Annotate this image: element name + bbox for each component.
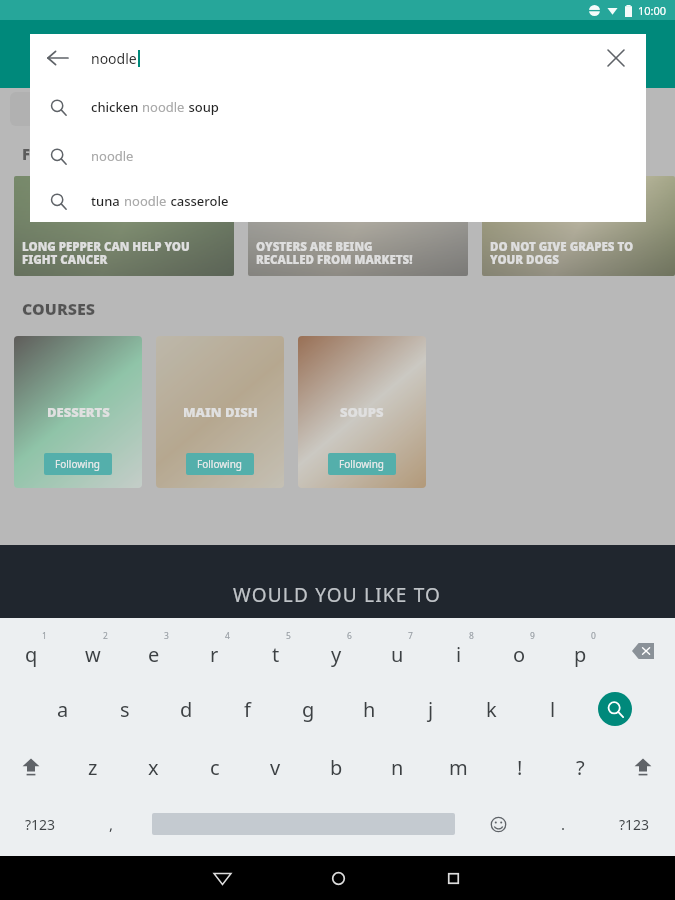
button[interactable]: l (522, 680, 583, 738)
staticText: Following (197, 457, 243, 471)
button[interactable]: Filter (10, 92, 44, 126)
staticText: SOUPS (340, 403, 384, 421)
button[interactable]: LONG PEPPER CAN HELP YOU FIGHT CANCER (14, 176, 234, 276)
button[interactable]: SOUPS (298, 336, 426, 488)
button[interactable] (142, 796, 464, 852)
button[interactable]: ! (489, 738, 550, 796)
button[interactable]: ?123 (594, 796, 675, 852)
button[interactable]: OYSTERS ARE BEING RECALLED FROM MARKETS! (248, 176, 468, 276)
button[interactable]: 7 (367, 622, 428, 680)
button[interactable]: j (400, 680, 461, 738)
staticText: 1 (42, 630, 47, 642)
button[interactable]: 4 (184, 622, 245, 680)
staticText: o (513, 641, 526, 668)
button[interactable]: ?123 (0, 796, 80, 852)
staticText: x (148, 754, 159, 781)
button[interactable]: 9 (489, 622, 550, 680)
staticText: r (210, 641, 219, 668)
staticText: p (574, 641, 587, 668)
staticText: 4 (225, 630, 230, 642)
staticText: MAIN DISH (183, 403, 258, 421)
button[interactable]: 6 (306, 622, 367, 680)
staticText: q (25, 641, 38, 668)
button[interactable]: f (217, 680, 278, 738)
button[interactable]: k (461, 680, 522, 738)
staticText: . (561, 814, 566, 834)
button[interactable]: Home (316, 856, 360, 900)
button[interactable]: Back (200, 856, 244, 900)
staticText: 10:00 (638, 3, 667, 18)
button[interactable]: a (32, 680, 94, 738)
button[interactable]: x (123, 738, 184, 796)
staticText: a (57, 696, 69, 723)
button[interactable]: Following (44, 453, 112, 475)
staticText: , (109, 814, 114, 834)
button[interactable]: v (245, 738, 306, 796)
button[interactable]: g (278, 680, 339, 738)
staticText: COURSES (22, 298, 96, 320)
button[interactable]: Clear (596, 38, 636, 78)
button[interactable]: tuna (30, 180, 646, 222)
button[interactable]: Shift (0, 738, 62, 796)
button[interactable]: , (80, 796, 142, 852)
staticText: FEATURED (22, 144, 98, 164)
staticText: chicken (91, 98, 142, 116)
staticText: b (330, 754, 343, 781)
button[interactable]: Back (38, 38, 78, 78)
staticText: ! (517, 754, 523, 781)
button[interactable]: Recents (431, 856, 475, 900)
staticText: z (88, 754, 98, 781)
staticText: DESSERTS (47, 403, 110, 421)
button[interactable]: s (94, 680, 156, 738)
staticText: 7 (408, 630, 413, 642)
button[interactable]: noodle (30, 131, 646, 180)
staticText: 6 (347, 630, 352, 642)
button[interactable]: 8 (428, 622, 489, 680)
button[interactable]: DO NOT GIVE GRAPES TO YOUR DOGS (482, 176, 675, 276)
button[interactable]: 2 (62, 622, 123, 680)
staticText: noodle (124, 192, 167, 210)
button[interactable]: c (184, 738, 245, 796)
staticText: 9 (530, 630, 535, 642)
staticText: t (272, 641, 280, 668)
staticText: w (85, 641, 101, 668)
staticText: g (302, 696, 315, 723)
button[interactable]: h (339, 680, 400, 738)
staticText: 0 (591, 630, 596, 642)
button[interactable]: 3 (123, 622, 184, 680)
staticText: noodle (142, 98, 185, 116)
button[interactable]: 1 (0, 622, 62, 680)
staticText: 2 (103, 630, 108, 642)
staticText: e (148, 641, 160, 668)
button[interactable]: Shift (611, 738, 675, 796)
staticText: noodle (91, 147, 134, 165)
button[interactable]: 0 (550, 622, 611, 680)
staticText: DO NOT GIVE GRAPES TO YOUR DOGS (490, 239, 634, 268)
button[interactable]: 5 (245, 622, 306, 680)
staticText: c (210, 754, 220, 781)
button[interactable]: Search (583, 680, 647, 738)
staticText: u (391, 641, 404, 668)
staticText: tuna (91, 192, 124, 210)
button[interactable]: chicken (30, 82, 646, 131)
button[interactable]: Emoji (464, 796, 532, 852)
staticText: 5 (286, 630, 291, 642)
staticText: k (486, 696, 497, 723)
button[interactable]: b (306, 738, 367, 796)
button[interactable]: Following (186, 453, 254, 475)
staticText: casserole (167, 192, 229, 210)
staticText: ?123 (25, 815, 56, 834)
button[interactable]: DESSERTS (14, 336, 142, 488)
button[interactable]: ? (550, 738, 611, 796)
button[interactable]: m (428, 738, 489, 796)
button[interactable]: MAIN DISH (156, 336, 284, 488)
button[interactable]: z (62, 738, 123, 796)
staticText: noodle (91, 49, 137, 68)
button[interactable]: d (156, 680, 217, 738)
staticText: Following (339, 457, 385, 471)
button[interactable]: Backspace (611, 622, 675, 680)
staticText: m (449, 754, 468, 781)
button[interactable]: Following (328, 453, 396, 475)
button[interactable]: . (532, 796, 594, 852)
button[interactable]: n (367, 738, 428, 796)
